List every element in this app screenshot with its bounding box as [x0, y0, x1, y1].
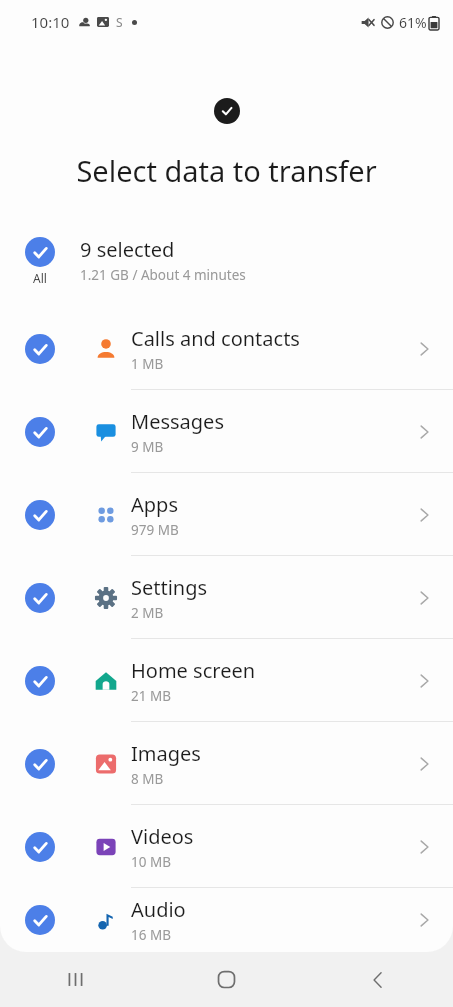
- staticText: Images: [131, 740, 201, 767]
- staticText: 1.21 GB / About 4 minutes: [80, 266, 246, 284]
- button[interactable]: Apps: [0, 473, 453, 556]
- staticText: Calls and contacts: [131, 325, 300, 352]
- staticText: 1 MB: [131, 355, 164, 373]
- button[interactable]: Home: [151, 952, 302, 1007]
- button[interactable]: Images: [0, 722, 453, 805]
- staticText: Settings: [131, 574, 208, 601]
- button[interactable]: Home screen: [0, 639, 453, 722]
- button[interactable]: Videos: [0, 805, 453, 888]
- staticText: Videos: [131, 823, 194, 850]
- staticText: All: [33, 270, 47, 286]
- staticText: Audio: [131, 896, 186, 923]
- staticText: 61%: [399, 13, 427, 32]
- staticText: 2 MB: [131, 604, 164, 622]
- staticText: 979 MB: [131, 521, 179, 539]
- button[interactable]: Recents: [0, 952, 151, 1007]
- staticText: 10 MB: [131, 853, 171, 871]
- button[interactable]: Audio: [0, 888, 453, 952]
- staticText: 9 MB: [131, 438, 164, 456]
- staticText: Messages: [131, 408, 224, 435]
- button[interactable]: All: [0, 228, 453, 292]
- staticText: Apps: [131, 491, 178, 518]
- staticText: 9 selected: [80, 236, 175, 263]
- staticText: 16 MB: [131, 926, 171, 944]
- button[interactable]: Calls and contacts: [0, 307, 453, 390]
- staticText: Home screen: [131, 657, 256, 684]
- button[interactable]: Messages: [0, 390, 453, 473]
- staticText: 8 MB: [131, 770, 164, 788]
- button[interactable]: Selected: [214, 98, 240, 124]
- button[interactable]: Back: [302, 952, 453, 1007]
- button[interactable]: Settings: [0, 556, 453, 639]
- staticText: 21 MB: [131, 687, 171, 705]
- staticText: Select data to transfer: [0, 151, 453, 190]
- staticText: 10:10: [31, 12, 70, 32]
- staticText: S: [116, 14, 123, 30]
